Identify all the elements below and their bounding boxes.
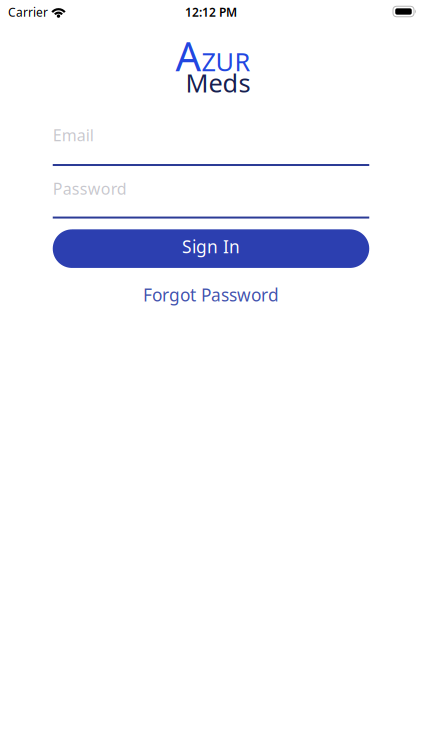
staticText: Sign In [182,235,240,258]
staticText: Meds [185,66,250,99]
button[interactable]: Forgot Password [143,283,279,306]
button[interactable]: Password [53,178,369,218]
staticText: Forgot Password [143,283,279,306]
staticText: Password [53,178,127,199]
staticText: A [175,29,201,82]
staticText: Email [53,124,94,146]
button[interactable]: Sign In [53,229,369,268]
button[interactable]: Email [53,124,369,166]
staticText: Carrier [8,4,48,20]
staticText: 12:12 PM [185,4,237,20]
staticText: ZUR [201,45,250,78]
